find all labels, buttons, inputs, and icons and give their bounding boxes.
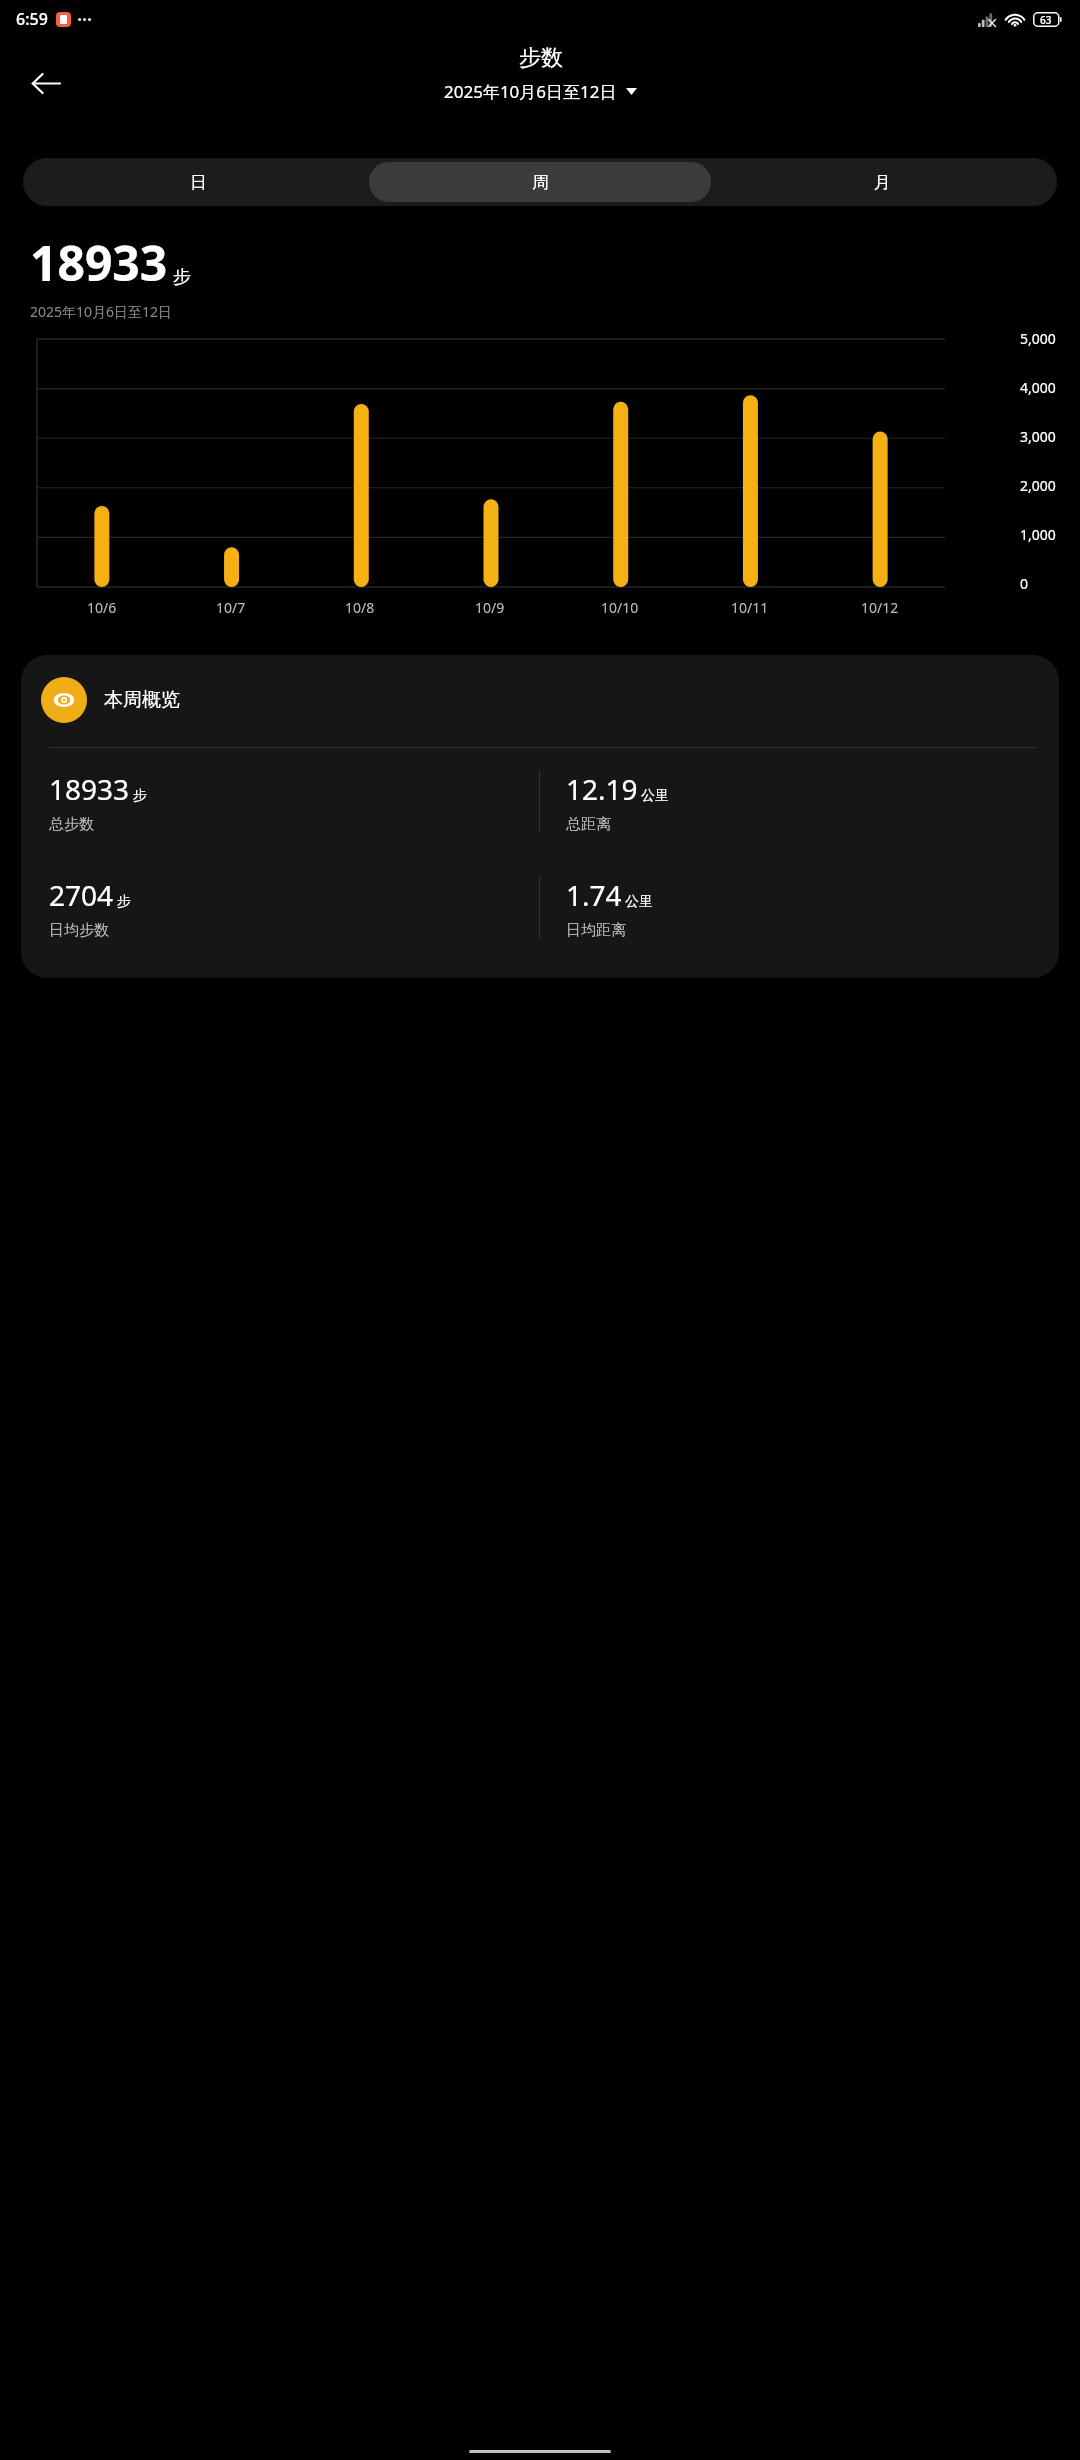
staticText: 18933 [30,230,168,295]
staticText: 10/10 [601,598,639,617]
staticText: 步 [133,787,147,805]
staticText: 步 [117,893,131,911]
staticText: 10/8 [345,598,375,617]
staticText: 2704 [49,876,114,914]
staticText: 18933 [49,770,130,808]
staticText: 日 [190,172,207,193]
button[interactable]: Back [14,52,76,114]
staticText: 5,000 [1020,329,1056,348]
staticText: 2025年10月6日至12日 [30,302,173,321]
staticText: 10/7 [216,598,246,617]
button[interactable]: 本周概览 [21,655,1059,978]
staticText: 4,000 [1020,378,1056,397]
staticText: 1,000 [1020,525,1056,544]
staticText: 0 [1020,574,1029,593]
staticText: 步 [173,266,191,289]
staticText: 周 [532,172,549,193]
staticText: 日均步数 [49,921,109,940]
staticText: 公里 [641,787,669,805]
staticText: 10/12 [861,598,899,617]
staticText: 本周概览 [104,688,180,712]
staticText: 10/11 [731,598,769,617]
staticText: 步数 [519,44,563,72]
staticText: 月 [874,172,891,193]
staticText: 3,000 [1020,427,1056,446]
staticText: 12.19 [566,770,638,808]
staticText: 日均距离 [566,921,626,940]
staticText: 1.74 [566,876,622,914]
staticText: 6:59 [16,8,48,30]
staticText: 2025年10月6日至12日 [444,80,617,103]
staticText: 总步数 [49,815,94,834]
staticText: 10/6 [87,598,117,617]
staticText: 10/9 [475,598,505,617]
staticText: 总距离 [566,815,611,834]
staticText: 63 [1040,13,1052,27]
button[interactable]: 周 [369,162,711,202]
button[interactable]: 2025年10月6日至12日 [438,78,643,105]
staticText: 2,000 [1020,476,1056,495]
button[interactable]: 月 [711,162,1053,202]
staticText: 公里 [625,893,653,911]
button[interactable]: 日 [27,162,369,202]
